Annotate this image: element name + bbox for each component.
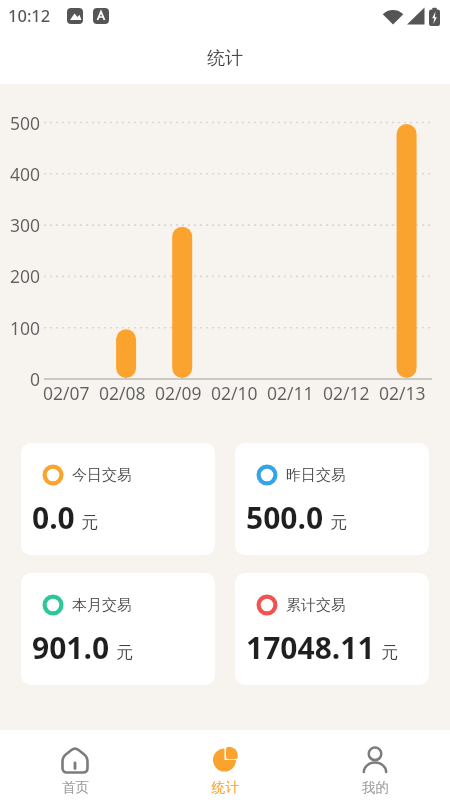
staticText: 02/09 xyxy=(155,381,202,405)
staticText: 元 xyxy=(116,642,133,663)
staticText: 元 xyxy=(81,512,98,533)
staticText: 我的 xyxy=(362,779,389,796)
staticText: 昨日交易 xyxy=(286,466,346,485)
staticText: 元 xyxy=(381,642,398,663)
staticText: 901.0 xyxy=(32,627,110,668)
button[interactable]: 累计交易 xyxy=(235,573,429,685)
staticText: 0.0 xyxy=(32,497,75,538)
staticText: 400 xyxy=(10,162,41,186)
button[interactable]: 我的 xyxy=(330,738,420,798)
staticText: 17048.11 xyxy=(246,627,375,668)
staticText: 500.0 xyxy=(246,497,324,538)
staticText: 0 xyxy=(30,367,41,391)
staticText: 02/07 xyxy=(43,381,90,405)
staticText: 02/11 xyxy=(267,381,314,405)
staticText: 累计交易 xyxy=(286,596,346,615)
staticText: 02/13 xyxy=(379,381,426,405)
staticText: 10:12 xyxy=(8,4,51,26)
staticText: 02/08 xyxy=(99,381,146,405)
staticText: 100 xyxy=(10,316,41,340)
staticText: 统计 xyxy=(212,779,239,796)
staticText: 02/12 xyxy=(323,381,370,405)
staticText: 300 xyxy=(10,213,41,237)
staticText: 500 xyxy=(10,111,41,135)
staticText: 本月交易 xyxy=(72,596,132,615)
button[interactable]: 今日交易 xyxy=(21,443,215,555)
button[interactable]: 昨日交易 xyxy=(235,443,429,555)
staticText: 统计 xyxy=(207,47,243,70)
staticText: 02/10 xyxy=(211,381,258,405)
staticText: 今日交易 xyxy=(72,466,132,485)
button[interactable]: 本月交易 xyxy=(21,573,215,685)
button[interactable]: 首页 xyxy=(30,738,120,798)
staticText: 200 xyxy=(10,264,41,288)
button[interactable]: 统计 xyxy=(180,738,270,798)
staticText: 首页 xyxy=(62,779,89,796)
staticText: 元 xyxy=(330,512,347,533)
